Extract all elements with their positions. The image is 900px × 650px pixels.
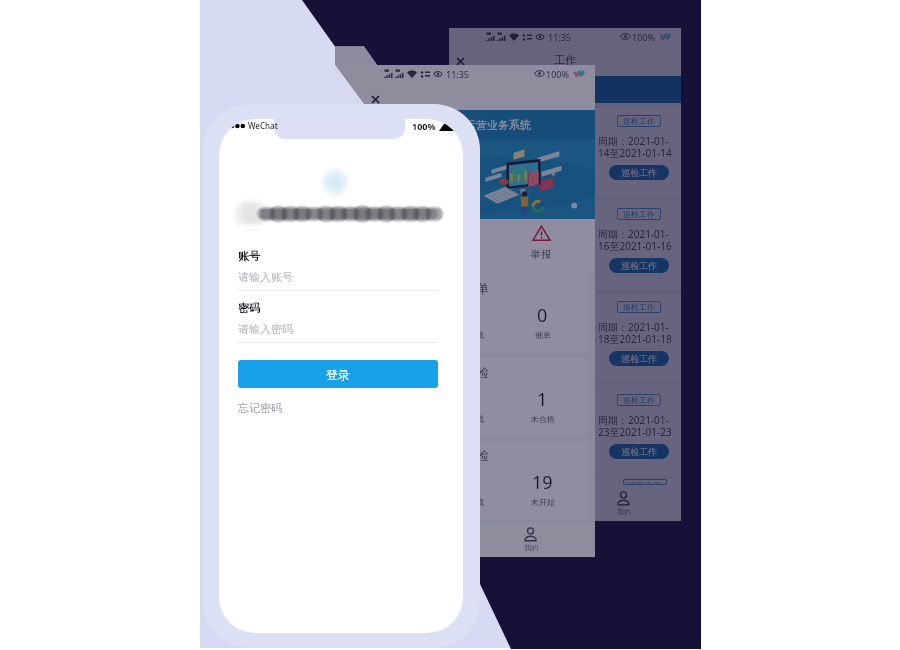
staticText: 未开始 bbox=[531, 497, 555, 507]
staticText: 1 bbox=[537, 387, 548, 412]
staticText: 密码 bbox=[238, 301, 260, 315]
staticText: 巡检工作 bbox=[623, 209, 655, 219]
staticText: 事件 bbox=[455, 248, 475, 261]
button[interactable]: 本月巡检 bbox=[342, 441, 588, 520]
button[interactable]: 巡检工作 bbox=[449, 387, 681, 475]
button[interactable]: 我的 bbox=[465, 522, 595, 557]
staticText: 周期：2021-01- 16至2021-01-16 bbox=[598, 227, 680, 253]
staticText: 请输入密码 bbox=[238, 322, 293, 336]
staticText: 巡检工作 bbox=[621, 446, 657, 457]
staticText: 我的 bbox=[617, 507, 631, 516]
staticText: 巡检工作 bbox=[621, 167, 657, 178]
button[interactable]: 工作 bbox=[335, 522, 465, 557]
staticText: 巡检工作 bbox=[621, 353, 657, 364]
button[interactable]: 请输入密码 bbox=[238, 315, 438, 343]
staticText: 巡检工作 bbox=[623, 116, 655, 126]
staticText: 100% bbox=[632, 31, 655, 43]
staticText: 登录 bbox=[326, 367, 350, 382]
staticText: 智慧燃气安全运营业务系统 bbox=[399, 118, 531, 132]
staticText: 100% bbox=[546, 68, 569, 80]
button[interactable]: 巡检工作 bbox=[617, 301, 661, 313]
staticText: 工作 bbox=[554, 53, 576, 67]
button[interactable]: 巡检工作 bbox=[609, 258, 669, 273]
button[interactable]: 巡检工作 bbox=[609, 444, 669, 459]
staticText: 已完成 bbox=[460, 414, 484, 424]
staticText: 周期：2021-01- 18至2021-01-18 bbox=[598, 320, 680, 346]
button[interactable]: 巡检工作 bbox=[609, 165, 669, 180]
staticText: 今日巡检 bbox=[352, 365, 578, 380]
staticText: WeChat bbox=[248, 120, 278, 131]
staticText: 巡检工作 bbox=[623, 395, 655, 405]
staticText: 未合格 bbox=[531, 414, 555, 424]
staticText: 巡检工作 bbox=[629, 480, 661, 484]
button[interactable]: 巡检工作 bbox=[449, 201, 681, 289]
button[interactable]: 今日工单 bbox=[342, 274, 588, 353]
button[interactable]: 巡检工作 bbox=[617, 394, 661, 406]
button[interactable]: 我的 bbox=[565, 485, 681, 521]
staticText: 巡检工作 bbox=[621, 260, 657, 271]
staticText: 100% bbox=[412, 120, 436, 132]
button[interactable]: 事件 bbox=[443, 224, 487, 261]
staticText: 已完成 bbox=[460, 497, 484, 507]
staticText: 19 bbox=[532, 470, 553, 495]
button[interactable]: 巡检工作 bbox=[617, 208, 661, 220]
staticText: 请输入账号 bbox=[238, 270, 293, 284]
button[interactable]: 请输入账号 bbox=[238, 263, 438, 291]
staticText: 周期：2021-01- 14至2021-01-14 bbox=[598, 134, 680, 160]
button[interactable]: 忘记密码 bbox=[238, 401, 282, 415]
button[interactable]: 登录 bbox=[238, 360, 438, 388]
staticText: 催单 bbox=[535, 330, 551, 340]
staticText: 我的 bbox=[524, 543, 538, 552]
staticText: 举报 bbox=[531, 248, 551, 261]
staticText: 11:35 bbox=[446, 68, 470, 80]
button[interactable]: 举报 bbox=[519, 224, 563, 261]
staticText: 账号 bbox=[238, 249, 260, 263]
button[interactable]: 巡检工作 bbox=[449, 108, 681, 196]
staticText: 20 bbox=[391, 387, 412, 412]
button[interactable]: 巡检工作 bbox=[449, 294, 681, 382]
staticText: 11:35 bbox=[548, 31, 572, 43]
staticText: 周期：2021-01- 23至2021-01-23 bbox=[598, 413, 680, 439]
button[interactable]: 巡检工作 bbox=[609, 351, 669, 366]
button[interactable]: 巡检工作 bbox=[617, 115, 661, 127]
staticText: 巡检工作 bbox=[623, 302, 655, 312]
staticText: 0 bbox=[537, 303, 548, 328]
button[interactable]: 巡检工作 bbox=[623, 479, 667, 485]
button[interactable]: 今日巡检 bbox=[342, 358, 588, 437]
staticText: 今日工单 bbox=[352, 281, 578, 296]
staticText: 已完成 bbox=[460, 330, 484, 340]
button[interactable]: Close bbox=[453, 54, 467, 68]
button[interactable]: Close bbox=[368, 92, 382, 106]
staticText: 本月巡检 bbox=[352, 448, 578, 463]
